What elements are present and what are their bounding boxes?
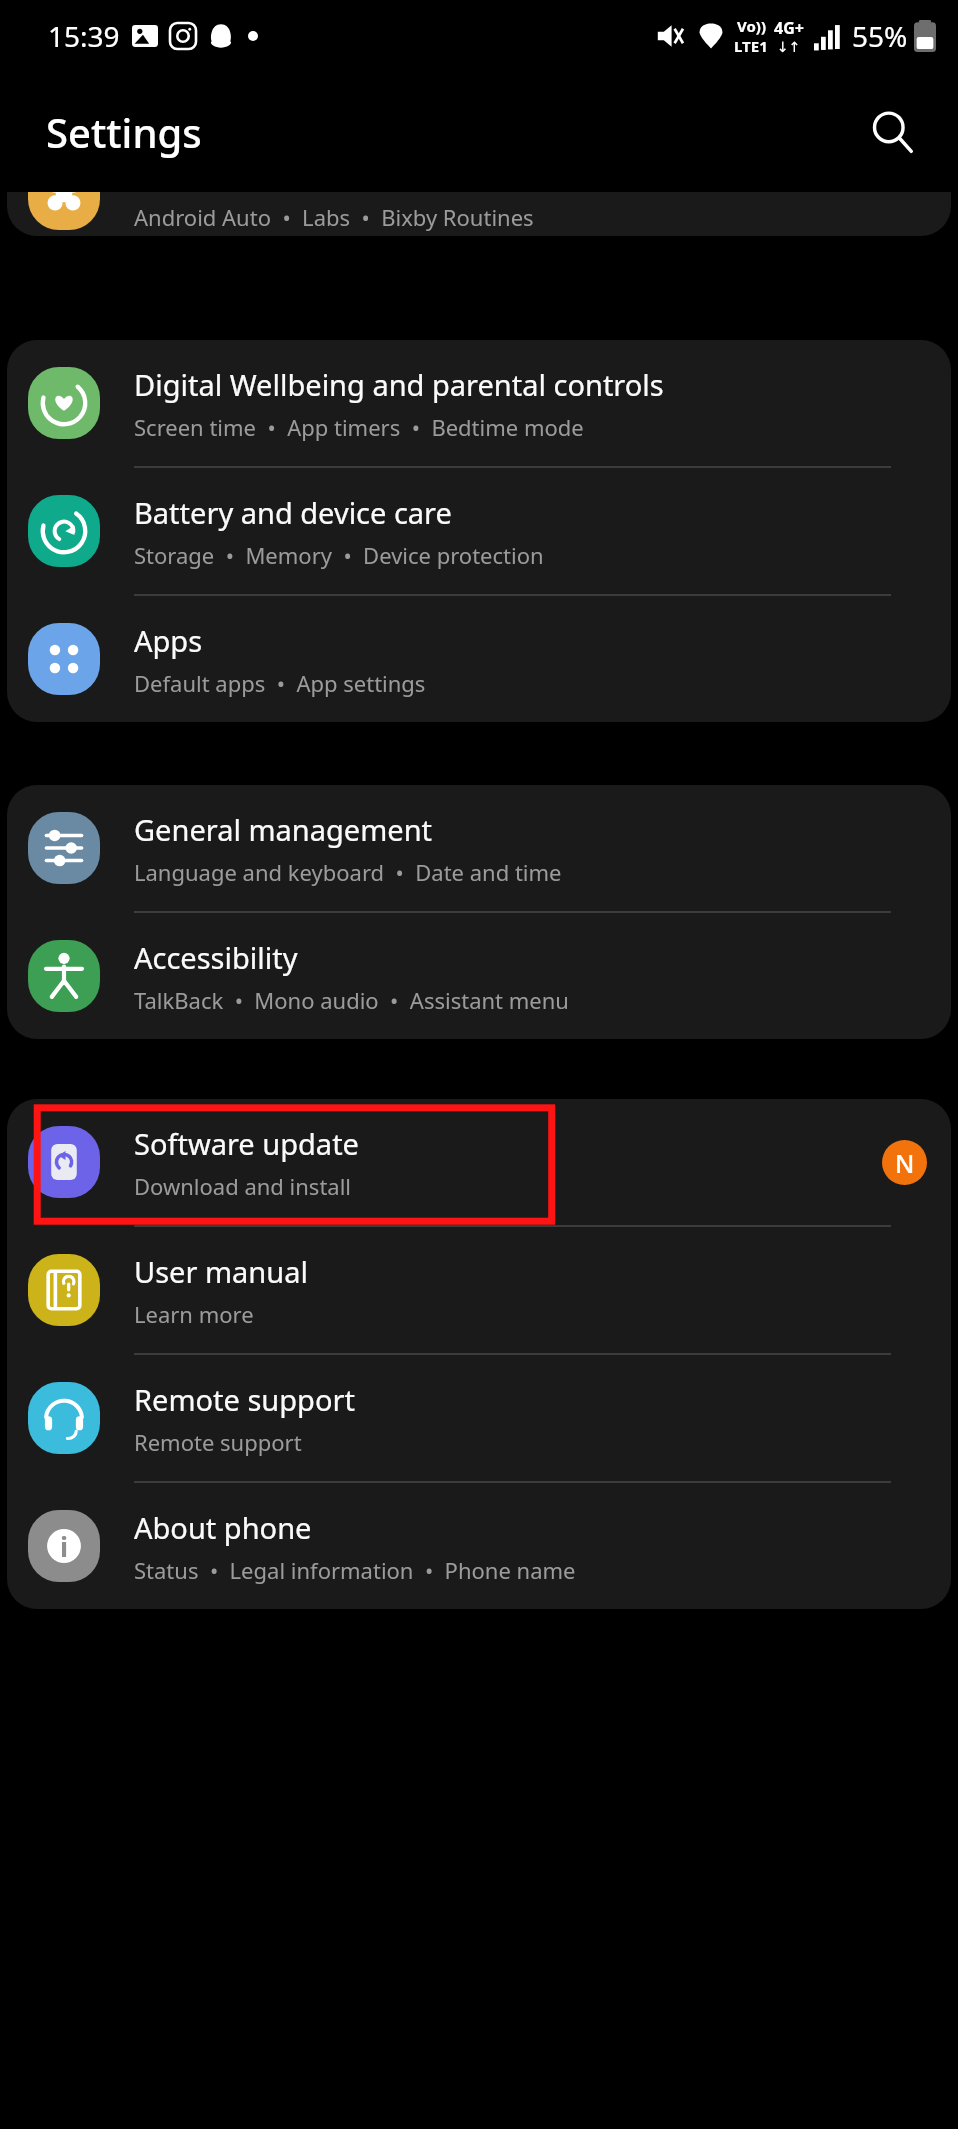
staticText: Digital Wellbeing and parental controls [134,365,664,404]
staticText: User manual [134,1252,308,1291]
button[interactable]: Software update [7,1099,951,1225]
staticText: ↓↑ [777,39,801,55]
staticText: Remote support [134,1380,355,1419]
staticText: Language and keyboard • Date and time [134,857,562,887]
staticText: About phone [134,1508,312,1547]
staticText: Screen time • App timers • Bedtime mode [134,412,584,442]
staticText: Storage • Memory • Device protection [134,540,544,570]
staticText: TalkBack • Mono audio • Assistant menu [134,985,569,1015]
staticText: 15:39 [48,17,120,55]
button[interactable]: Search [856,96,928,168]
staticText: Status • Legal information • Phone name [134,1555,576,1585]
staticText: 4G+ [774,17,804,39]
staticText: Software update [134,1124,359,1163]
staticText: Download and install [134,1171,352,1201]
staticText: General management [134,810,433,849]
button[interactable]: Advanced features [7,192,951,236]
staticText: Default apps • App settings [134,668,426,698]
button[interactable]: Remote support [7,1355,951,1481]
button[interactable]: Apps [7,596,951,722]
staticText: Android Auto • Labs • Bixby Routines [134,202,534,232]
staticText: Vo)) [737,16,766,36]
staticText: i [60,1528,69,1565]
button[interactable]: Digital Wellbeing and parental controls [7,340,951,466]
button[interactable]: User manual [7,1227,951,1353]
staticText: LTE1 [734,36,768,56]
button[interactable]: Battery and device care [7,468,951,594]
staticText: N [895,1146,915,1180]
staticText: Accessibility [134,938,298,977]
button[interactable]: Accessibility [7,913,951,1039]
staticText: Apps [134,621,203,660]
staticText: Remote support [134,1427,302,1457]
staticText: Battery and device care [134,493,452,532]
button[interactable]: i [7,1483,951,1609]
staticText: Learn more [134,1299,254,1329]
staticText: 55% [852,17,908,55]
button[interactable]: General management [7,785,951,911]
staticText: Settings [46,105,202,159]
